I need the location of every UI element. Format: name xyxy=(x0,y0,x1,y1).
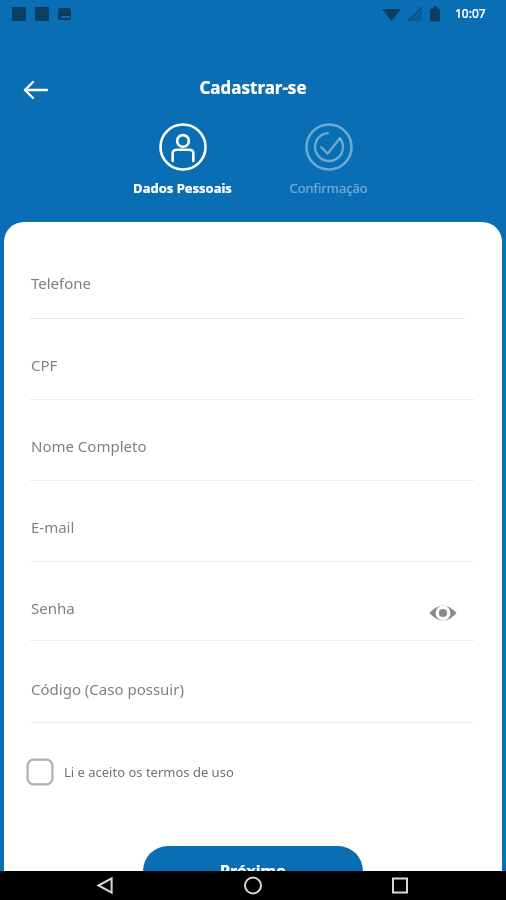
button[interactable]: Back xyxy=(86,871,126,900)
staticText: Telefone xyxy=(31,273,92,293)
staticText: Cadastrar-se xyxy=(0,76,506,99)
button[interactable]: Código (Caso possuir) xyxy=(26,671,476,723)
staticText: Nome Completo xyxy=(31,436,147,456)
button[interactable]: Próximo xyxy=(143,846,363,896)
button[interactable]: Back xyxy=(14,68,58,112)
staticText: Senha xyxy=(31,598,75,618)
staticText: 10:07 xyxy=(455,5,486,21)
button[interactable]: Show password xyxy=(426,596,460,630)
button[interactable]: E-mail xyxy=(26,509,476,561)
button[interactable]: Li e aceito os termos de uso xyxy=(26,752,234,792)
staticText: Confirmação xyxy=(289,179,368,196)
staticText: Li e aceito os termos de uso xyxy=(64,763,234,781)
button[interactable]: Recent apps xyxy=(380,871,420,900)
staticText: Próximo xyxy=(220,860,287,882)
button[interactable]: Telefone xyxy=(26,265,476,317)
button[interactable]: Senha xyxy=(26,590,476,642)
button[interactable]: Confirmação xyxy=(273,122,383,196)
staticText: Dados Pessoais xyxy=(133,179,232,196)
staticText: CPF xyxy=(31,355,58,375)
button[interactable]: CPF xyxy=(26,347,476,399)
staticText: Código (Caso possuir) xyxy=(31,679,184,699)
button[interactable]: Home xyxy=(233,871,273,900)
button[interactable]: Dados Pessoais xyxy=(127,122,237,196)
button[interactable]: Nome Completo xyxy=(26,428,476,480)
staticText: E-mail xyxy=(31,517,75,537)
